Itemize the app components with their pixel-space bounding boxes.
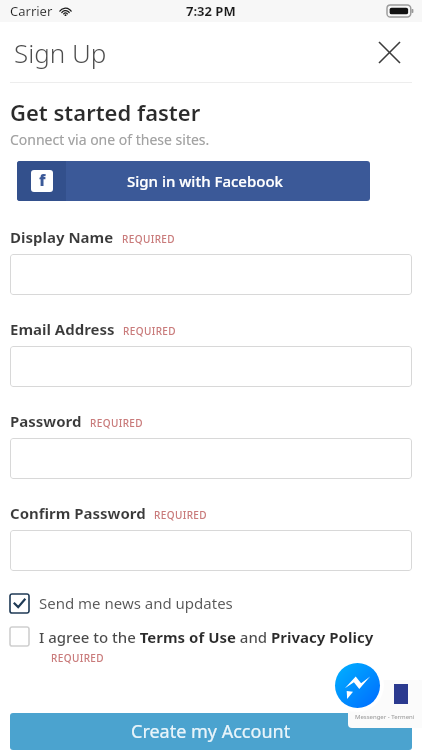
- staticText: Get started faster: [10, 97, 201, 127]
- button[interactable]: f: [17, 161, 370, 201]
- staticText: Display Name: [10, 227, 114, 247]
- button[interactable]: [10, 438, 412, 479]
- button[interactable]: [10, 254, 412, 295]
- staticText: Email Address: [10, 319, 115, 339]
- button[interactable]: Create my Account: [10, 713, 412, 750]
- staticText: Sign in with Facebook: [127, 171, 283, 191]
- staticText: REQUIRED: [154, 508, 208, 522]
- button[interactable]: Send me news and updates: [10, 593, 412, 613]
- staticText: Send me news and updates: [39, 593, 233, 613]
- staticText: REQUIRED: [123, 324, 177, 338]
- staticText: Carrier: [10, 2, 53, 20]
- staticText: 7:32 PM: [186, 2, 236, 20]
- staticText: REQUIRED: [90, 416, 144, 430]
- staticText: Sign Up: [14, 35, 107, 70]
- button[interactable]: I agree to the Terms of Use and Privacy …: [10, 627, 412, 665]
- staticText: Password: [10, 411, 82, 431]
- staticText: Create my Account: [131, 719, 291, 744]
- staticText: I agree to the Terms of Use and Privacy …: [39, 627, 374, 647]
- staticText: f: [39, 170, 46, 191]
- button[interactable]: [10, 530, 412, 571]
- staticText: REQUIRED: [51, 651, 105, 665]
- staticText: Messenger - Termeni: [355, 713, 415, 721]
- button[interactable]: [10, 346, 412, 387]
- staticText: Confirm Password: [10, 503, 146, 523]
- staticText: REQUIRED: [122, 232, 176, 246]
- staticText: Connect via one of these sites.: [10, 130, 210, 149]
- button[interactable]: Close: [368, 31, 410, 73]
